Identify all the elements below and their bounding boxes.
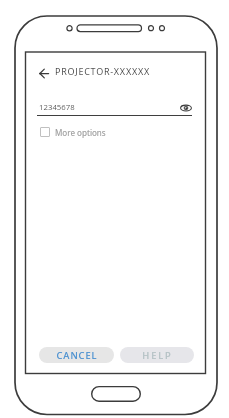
staticText: CANCEL xyxy=(56,349,98,362)
button[interactable]: CANCEL xyxy=(39,347,114,363)
staticText: HELP xyxy=(142,349,173,362)
staticText: More options xyxy=(55,127,106,138)
button[interactable]: Back xyxy=(34,63,54,83)
staticText: 12345678 xyxy=(39,102,75,113)
button[interactable]: HELP xyxy=(120,347,194,363)
staticText: PROJECTOR-XXXXXX xyxy=(55,65,150,77)
button[interactable]: Show password xyxy=(178,100,193,115)
button[interactable]: More options xyxy=(40,125,106,139)
